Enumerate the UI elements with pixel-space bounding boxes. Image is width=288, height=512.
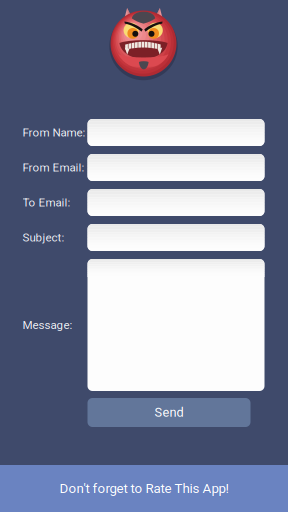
button[interactable] — [87, 224, 264, 251]
staticText: Send — [154, 405, 183, 420]
button[interactable] — [87, 189, 264, 216]
staticText: From Email: — [22, 161, 84, 174]
staticText: Message: — [22, 318, 72, 332]
button[interactable] — [87, 119, 264, 146]
button[interactable]: Don't forget to Rate This App! — [0, 465, 288, 512]
button[interactable]: Send — [87, 398, 250, 427]
staticText: From Name: — [22, 126, 85, 139]
button[interactable] — [87, 154, 264, 181]
staticText: Subject: — [22, 231, 64, 244]
staticText: Don't forget to Rate This App! — [59, 481, 228, 496]
staticText: To Email: — [22, 196, 70, 209]
button[interactable] — [87, 259, 264, 391]
